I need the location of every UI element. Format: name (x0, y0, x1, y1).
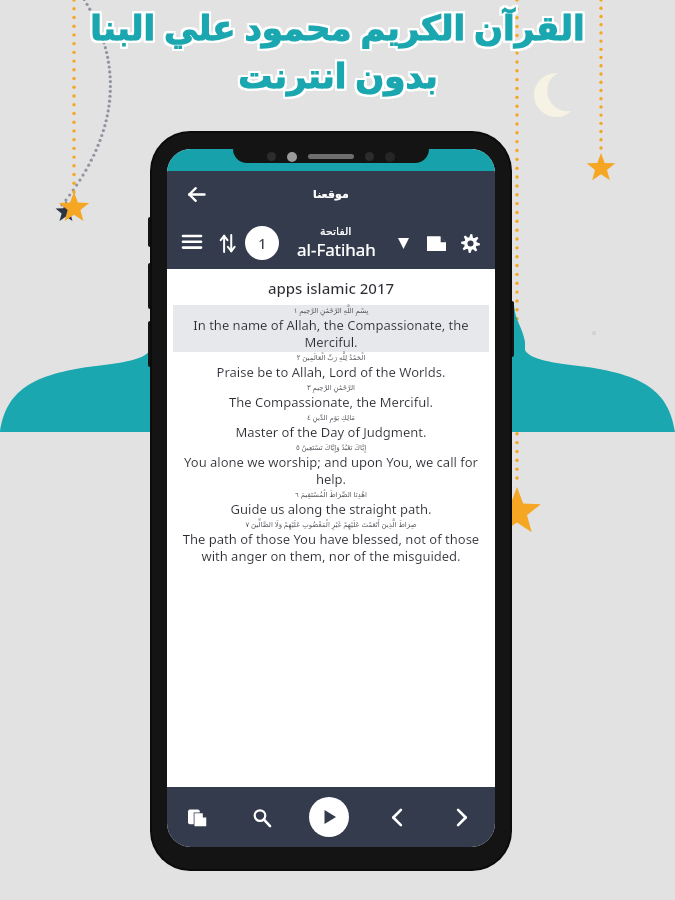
staticText: Master of the Day of Judgment. (177, 423, 485, 441)
staticText: In the name of Allah, the Compassionate,… (177, 316, 485, 351)
button[interactable]: Menu (177, 228, 207, 258)
staticText: القرآن الكريم محمود علي البنا (88, 2, 583, 48)
staticText: apps islamic 2017 (173, 278, 489, 298)
button[interactable]: Sort (213, 229, 241, 257)
staticText: بدون انترنت (240, 50, 440, 96)
button[interactable]: صِرَاطَ الَّذِينَ أَنْعَمْتَ عَلَيْهِمْ … (173, 519, 489, 566)
button[interactable]: 1 (245, 226, 279, 260)
staticText: مَالِكِ يَوْمِ الدِّينِ ٤ (177, 413, 485, 423)
button[interactable]: اهْدِنَا الصِّرَاطَ الْمُسْتَقِيمَ ٦ (173, 489, 489, 519)
staticText: القرآن الكريم محمود علي البنا (88, 4, 583, 50)
staticText: الرَّحْمَٰنِ الرَّحِيمِ ٣ (177, 383, 485, 393)
button[interactable]: الفاتحة (279, 225, 393, 261)
staticText: القرآن الكريم محمود علي البنا (90, 2, 585, 48)
staticText: القرآن الكريم محمود علي البنا (90, 6, 585, 52)
staticText: القرآن الكريم محمود علي البنا (90, 4, 585, 50)
button[interactable]: Copy (179, 799, 215, 835)
button[interactable]: Search (243, 799, 279, 835)
button[interactable]: Next (443, 799, 479, 835)
button[interactable]: إِيَّاكَ نَعْبُدُ وَإِيَّاكَ نَسْتَعِينُ… (173, 442, 489, 489)
staticText: القرآن الكريم محمود علي البنا (88, 6, 583, 52)
button[interactable]: مَالِكِ يَوْمِ الدِّينِ ٤ (173, 412, 489, 442)
staticText: بدون انترنت (240, 54, 440, 100)
staticText: القرآن الكريم محمود علي البنا (92, 2, 587, 48)
staticText: بدون انترنت (238, 52, 438, 98)
staticText: Praise be to Allah, Lord of the Worlds. (177, 363, 485, 381)
staticText: بدون انترنت (240, 52, 440, 98)
staticText: بدون انترنت (236, 52, 436, 98)
staticText: الفاتحة (320, 225, 352, 238)
button[interactable]: Settings (455, 228, 485, 258)
staticText: بدون انترنت (236, 50, 436, 96)
staticText: بدون انترنت (238, 50, 438, 96)
staticText: The path of those You have blessed, not … (177, 530, 485, 565)
staticText: موقعنا (313, 188, 349, 201)
staticText: al-Fatihah (297, 238, 376, 261)
staticText: القرآن الكريم محمود علي البنا (92, 4, 587, 50)
button[interactable]: Dropdown (393, 233, 413, 253)
button[interactable]: Previous (379, 799, 415, 835)
button[interactable]: الْحَمْدُ لِلَّهِ رَبِّ الْعَالَمِينَ ٢ (173, 352, 489, 382)
button[interactable]: Page (421, 228, 451, 258)
staticText: The Compassionate, the Merciful. (177, 393, 485, 411)
staticText: اهْدِنَا الصِّرَاطَ الْمُسْتَقِيمَ ٦ (177, 490, 485, 500)
staticText: بِسْمِ اللَّهِ الرَّحْمَٰنِ الرَّحِيمِ ١ (177, 306, 485, 316)
staticText: إِيَّاكَ نَعْبُدُ وَإِيَّاكَ نَسْتَعِينُ… (177, 443, 485, 453)
button[interactable]: Play (309, 797, 349, 837)
button[interactable]: بِسْمِ اللَّهِ الرَّحْمَٰنِ الرَّحِيمِ ١ (173, 305, 489, 352)
staticText: You alone we worship; and upon You, we c… (177, 453, 485, 488)
staticText: صِرَاطَ الَّذِينَ أَنْعَمْتَ عَلَيْهِمْ … (177, 520, 485, 530)
button[interactable]: الرَّحْمَٰنِ الرَّحِيمِ ٣ (173, 382, 489, 412)
staticText: الْحَمْدُ لِلَّهِ رَبِّ الْعَالَمِينَ ٢ (177, 353, 485, 363)
staticText: Guide us along the straight path. (177, 500, 485, 518)
staticText: بدون انترنت (238, 54, 438, 100)
button[interactable]: Back (181, 179, 211, 209)
staticText: القرآن الكريم محمود علي البنا (92, 6, 587, 52)
staticText: 1 (258, 233, 267, 253)
staticText: بدون انترنت (236, 54, 436, 100)
